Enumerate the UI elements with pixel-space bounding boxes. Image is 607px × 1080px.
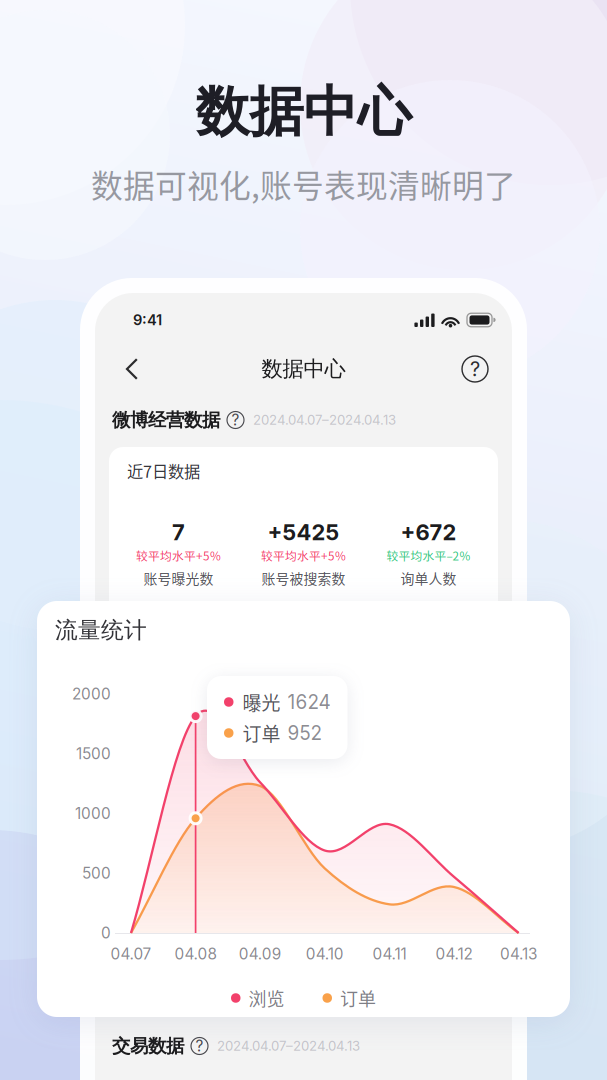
button[interactable]: Back <box>110 347 154 391</box>
staticText: ? <box>195 1037 203 1055</box>
staticText: 2000 <box>72 685 111 703</box>
staticText: 交易数据 <box>112 1034 184 1058</box>
staticText: 1500 <box>76 744 111 763</box>
staticText: 询单人数 <box>400 568 456 588</box>
staticText: 账号曝光数 <box>143 568 213 588</box>
staticText: 流量统计 <box>55 616 147 645</box>
staticText: 近7日数据 <box>127 459 200 483</box>
staticText: 账号被搜索数 <box>261 568 345 588</box>
staticText: 04.07 <box>110 945 151 963</box>
staticText: 04.11 <box>372 945 406 963</box>
staticText: 04.13 <box>500 945 537 963</box>
staticText: 较平均水平–2% <box>386 547 470 564</box>
staticText: 04.09 <box>239 945 282 963</box>
staticText: 较平均水平+5% <box>261 547 346 564</box>
staticText: 数据中心 <box>195 78 411 146</box>
staticText: 952 <box>287 721 322 744</box>
staticText: 订单 <box>242 719 280 747</box>
staticText: 订单 <box>340 985 376 1011</box>
staticText: +672 <box>400 519 456 546</box>
staticText: ? <box>470 357 480 381</box>
staticText: 7 <box>172 519 185 546</box>
staticText: ? <box>231 411 239 429</box>
staticText: 2024.04.07–2024.04.13 <box>253 412 396 428</box>
staticText: 9:41 <box>133 311 162 329</box>
staticText: 较平均水平+5% <box>136 547 221 564</box>
staticText: 微博经营数据 <box>112 408 220 432</box>
staticText: 500 <box>82 864 111 883</box>
staticText: 1624 <box>287 690 330 713</box>
staticText: 数据中心 <box>261 356 345 382</box>
staticText: 数据可视化,账号表现清晰明了 <box>91 161 516 207</box>
staticText: +5425 <box>267 519 339 546</box>
staticText: 2024.04.07–2024.04.13 <box>217 1038 360 1054</box>
staticText: 1000 <box>75 804 111 823</box>
button[interactable]: Help <box>453 347 497 391</box>
staticText: 04.08 <box>175 945 217 963</box>
staticText: 曝光 <box>242 688 280 716</box>
staticText: 浏览 <box>248 985 284 1011</box>
staticText: 04.10 <box>306 945 344 963</box>
staticText: 0 <box>101 924 111 942</box>
staticText: 04.12 <box>435 945 472 963</box>
